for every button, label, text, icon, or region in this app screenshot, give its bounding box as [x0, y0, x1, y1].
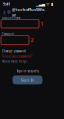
staticText: ▁▃▅ ᯤ ▮	[36, 1, 53, 7]
staticText: ‹	[3, 7, 5, 17]
staticText: Sign In	[20, 77, 34, 82]
staticText: Change password	[2, 49, 26, 53]
staticText: 1	[41, 20, 44, 27]
button[interactable]: Back	[2, 8, 6, 15]
staticText: @turboPlus5Wxyz	[12, 7, 45, 17]
staticText: Forgot your password?	[2, 55, 32, 58]
button[interactable]: Sign In	[12, 75, 42, 84]
staticText: Sign in securely	[16, 69, 38, 73]
staticText: 9:41	[3, 1, 10, 7]
staticText: Account name	[2, 16, 21, 20]
staticText: Password	[2, 32, 14, 36]
staticText: Need more help?	[2, 60, 27, 63]
staticText: 2	[31, 36, 34, 44]
